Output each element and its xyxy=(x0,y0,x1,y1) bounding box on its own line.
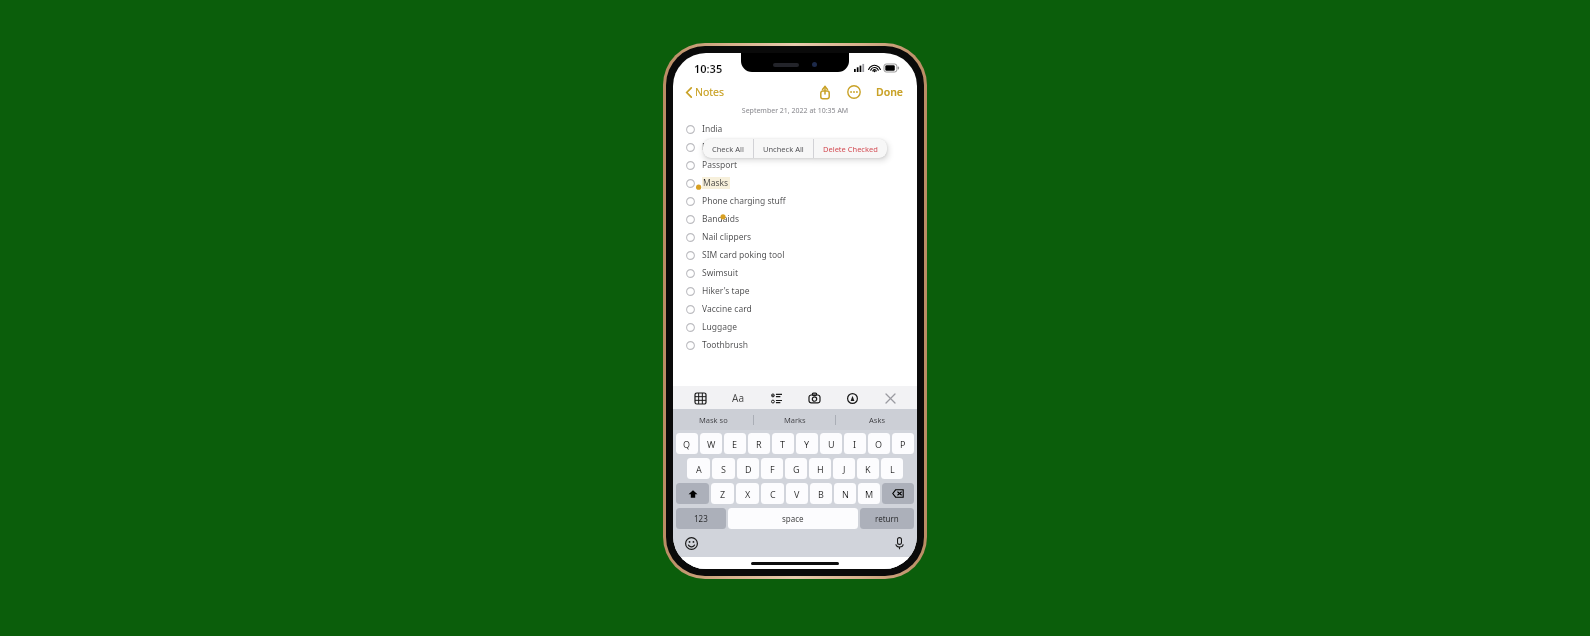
staticText: Aa xyxy=(732,391,744,405)
button[interactable]: Toothbrush xyxy=(673,336,917,354)
staticText: Find AAA card xyxy=(702,141,758,153)
staticText: Mask so xyxy=(699,415,728,425)
button[interactable]: Shift xyxy=(676,483,709,504)
staticText: Done xyxy=(876,85,904,99)
button[interactable]: Y xyxy=(796,433,818,454)
button[interactable]: U xyxy=(820,433,842,454)
button[interactable]: H xyxy=(809,458,831,479)
button[interactable]: O xyxy=(868,433,890,454)
button[interactable]: Markup xyxy=(841,387,863,409)
button[interactable]: W xyxy=(700,433,722,454)
button[interactable]: Delete Checked xyxy=(814,139,887,158)
staticText: T xyxy=(780,438,786,450)
button[interactable]: Table xyxy=(689,387,711,409)
staticText: space xyxy=(782,513,804,524)
button[interactable]: N xyxy=(834,483,856,504)
button[interactable]: M xyxy=(858,483,880,504)
staticText: Check All xyxy=(712,144,744,154)
button[interactable]: Marks xyxy=(754,409,835,430)
button[interactable]: Emoji xyxy=(681,533,701,553)
button[interactable]: Close xyxy=(879,387,901,409)
button[interactable]: A xyxy=(687,458,710,479)
button[interactable]: Hiker's tape xyxy=(673,282,917,300)
button[interactable]: Notes xyxy=(684,83,727,101)
button[interactable]: Share xyxy=(815,82,835,102)
button[interactable]: E xyxy=(724,433,746,454)
button[interactable]: Check All xyxy=(703,139,753,158)
button[interactable]: L xyxy=(881,458,903,479)
staticText: SIM card poking tool xyxy=(702,249,785,261)
button[interactable]: J xyxy=(833,458,855,479)
button[interactable]: More options xyxy=(844,82,864,102)
button[interactable]: Masks xyxy=(673,174,917,192)
button[interactable]: India xyxy=(673,120,917,138)
button[interactable]: I xyxy=(844,433,866,454)
staticText: Vaccine card xyxy=(702,303,752,315)
button[interactable]: R xyxy=(748,433,770,454)
staticText: Toothbrush xyxy=(702,339,749,351)
button[interactable]: S xyxy=(712,458,735,479)
staticText: K xyxy=(865,463,871,475)
staticText: W xyxy=(707,438,716,450)
staticText: Masks xyxy=(703,177,729,189)
button[interactable]: V xyxy=(786,483,808,504)
staticText: S xyxy=(721,463,726,475)
staticText: B xyxy=(818,488,824,500)
button[interactable]: K xyxy=(857,458,879,479)
button[interactable]: P xyxy=(892,433,914,454)
staticText: N xyxy=(842,488,849,500)
button[interactable]: D xyxy=(737,458,759,479)
button[interactable]: Z xyxy=(711,483,734,504)
button[interactable]: Dictate xyxy=(889,533,909,553)
button[interactable]: Done xyxy=(873,82,907,102)
button[interactable]: Camera xyxy=(803,387,825,409)
button[interactable]: Nail clippers xyxy=(673,228,917,246)
button[interactable]: Find AAA card xyxy=(673,138,917,156)
button[interactable]: Q xyxy=(676,433,698,454)
staticText: F xyxy=(770,463,775,475)
button[interactable]: Passport xyxy=(673,156,917,174)
button[interactable]: Checklist xyxy=(765,387,787,409)
button[interactable]: C xyxy=(761,483,784,504)
button[interactable]: T xyxy=(772,433,794,454)
staticText: 123 xyxy=(694,513,708,524)
staticText: India xyxy=(702,123,723,135)
button[interactable]: Asks xyxy=(836,409,917,430)
button[interactable]: G xyxy=(785,458,807,479)
button[interactable]: X xyxy=(736,483,759,504)
button[interactable]: Swimsuit xyxy=(673,264,917,282)
staticText: J xyxy=(843,463,846,475)
button[interactable]: Backspace xyxy=(882,483,914,504)
button[interactable]: Aa xyxy=(727,387,749,409)
staticText: Nail clippers xyxy=(702,231,752,243)
button[interactable]: return xyxy=(860,508,914,529)
staticText: Asks xyxy=(869,415,885,425)
button[interactable]: SIM card poking tool xyxy=(673,246,917,264)
staticText: Luggage xyxy=(702,321,737,333)
staticText: X xyxy=(745,488,751,500)
staticText: Phone charging stuff xyxy=(702,195,786,207)
staticText: Z xyxy=(720,488,726,500)
staticText: D xyxy=(745,463,752,475)
staticText: O xyxy=(875,438,883,450)
staticText: C xyxy=(770,488,776,500)
staticText: Uncheck All xyxy=(763,144,804,154)
button[interactable]: Phone charging stuff xyxy=(673,192,917,210)
staticText: Bandaids xyxy=(702,213,740,225)
staticText: E xyxy=(732,438,738,450)
staticText: Y xyxy=(804,438,810,450)
button[interactable]: Uncheck All xyxy=(754,139,813,158)
button[interactable]: Luggage xyxy=(673,318,917,336)
button[interactable]: Vaccine card xyxy=(673,300,917,318)
button[interactable]: 123 xyxy=(676,508,726,529)
button[interactable]: Mask so xyxy=(673,409,753,430)
staticText: R xyxy=(756,438,762,450)
button[interactable]: B xyxy=(810,483,832,504)
staticText: Passport xyxy=(702,159,738,171)
staticText: Marks xyxy=(784,415,806,425)
button[interactable]: F xyxy=(761,458,783,479)
button[interactable]: space xyxy=(728,508,858,529)
button[interactable]: Bandaids xyxy=(673,210,917,228)
staticText: L xyxy=(890,463,895,475)
staticText: return xyxy=(875,513,899,524)
